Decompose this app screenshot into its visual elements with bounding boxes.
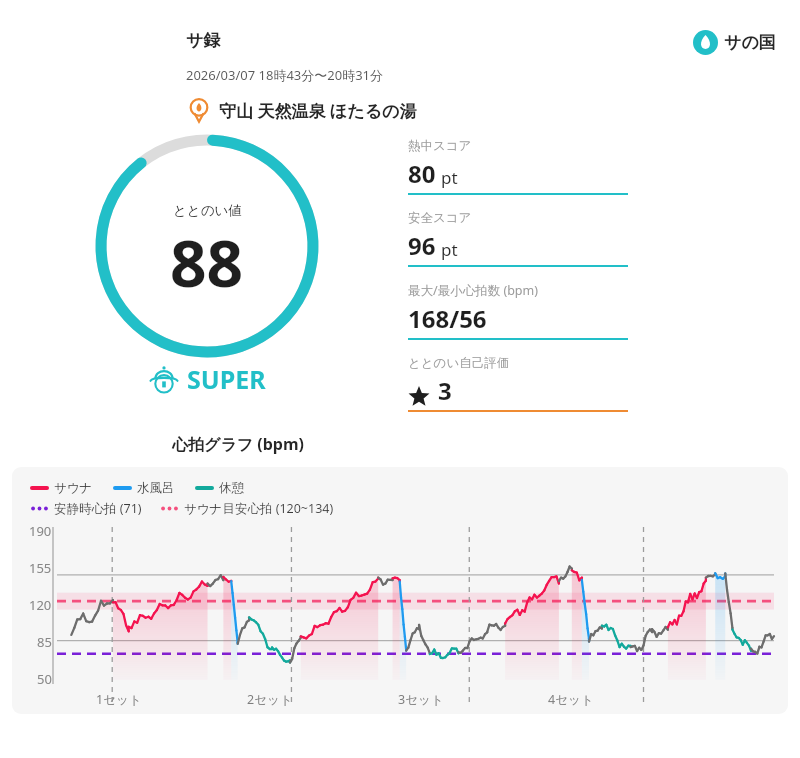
staticText: サの国 bbox=[724, 32, 776, 53]
staticText: pt bbox=[441, 166, 458, 189]
button[interactable]: ととのい自己評価 bbox=[408, 355, 628, 427]
staticText: ととのい自己評価 bbox=[408, 355, 510, 371]
staticText: サウナ bbox=[54, 480, 93, 496]
staticText: 88 bbox=[170, 219, 244, 306]
staticText: 2026/03/07 18時43分〜20時31分 bbox=[186, 66, 384, 84]
staticText: 50 bbox=[37, 670, 52, 688]
staticText: 120 bbox=[29, 596, 52, 614]
staticText: 水風呂 bbox=[137, 480, 175, 496]
staticText: 安全スコア bbox=[408, 210, 472, 226]
staticText: 熱中スコア bbox=[408, 138, 472, 154]
staticText: 最大/最小心拍数 (bpm) bbox=[408, 282, 538, 299]
staticText: サ録 bbox=[186, 30, 221, 51]
staticText: SUPER bbox=[187, 362, 266, 396]
staticText: 3セット bbox=[398, 691, 444, 708]
staticText: 190 bbox=[29, 522, 52, 540]
button[interactable]: Sanokuni logo bbox=[693, 30, 776, 55]
button[interactable]: SUPER bbox=[149, 362, 266, 396]
staticText: 休憩 bbox=[219, 480, 244, 496]
button[interactable]: 安全スコア bbox=[408, 210, 628, 282]
button[interactable]: Sauna facility location bbox=[186, 97, 417, 123]
staticText: 3 bbox=[438, 374, 452, 407]
staticText: 80 bbox=[408, 157, 436, 190]
staticText: ととのい値 bbox=[173, 202, 242, 219]
staticText: 85 bbox=[37, 633, 52, 651]
other: Sauna facility location bbox=[186, 97, 212, 123]
staticText: 安静時心拍 (71) bbox=[54, 500, 142, 517]
button[interactable]: 最大/最小心拍数 (bpm) bbox=[408, 282, 628, 355]
staticText: pt bbox=[441, 238, 458, 261]
staticText: 心拍グラフ (bpm) bbox=[172, 433, 304, 455]
staticText: 168/56 bbox=[408, 302, 487, 335]
staticText: サウナ目安心拍 (120~134) bbox=[184, 500, 334, 517]
staticText: 155 bbox=[29, 559, 52, 577]
staticText: 守山 天然温泉 ほたるの湯 bbox=[219, 99, 417, 122]
staticText: 1セット bbox=[96, 691, 142, 708]
staticText: 2セット bbox=[247, 691, 293, 708]
other: Sanokuni logo bbox=[693, 30, 718, 55]
staticText: 96 bbox=[408, 229, 436, 262]
button[interactable]: 熱中スコア bbox=[408, 138, 628, 210]
staticText: 4セット bbox=[548, 691, 594, 708]
